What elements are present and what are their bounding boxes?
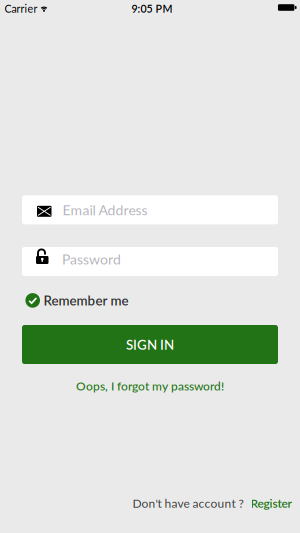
staticText: Carrier <box>4 2 37 15</box>
staticText: Password <box>62 251 121 267</box>
button[interactable]: Password <box>22 247 278 276</box>
staticText: SIGN IN <box>126 336 174 352</box>
staticText: Register <box>250 496 291 510</box>
button[interactable]: Register <box>250 496 291 510</box>
staticText: Don't have account ? <box>132 496 243 510</box>
staticText: 9:05 PM <box>131 2 172 15</box>
staticText: Email Address <box>62 201 147 218</box>
staticText: Remember me <box>43 292 128 308</box>
staticText: Oops, I forgot my password! <box>76 379 224 393</box>
button[interactable]: SIGN IN <box>22 325 278 364</box>
button[interactable]: Remember me <box>0 292 300 308</box>
button[interactable]: Oops, I forgot my password! <box>76 379 224 393</box>
button[interactable]: Email Address <box>22 195 278 224</box>
